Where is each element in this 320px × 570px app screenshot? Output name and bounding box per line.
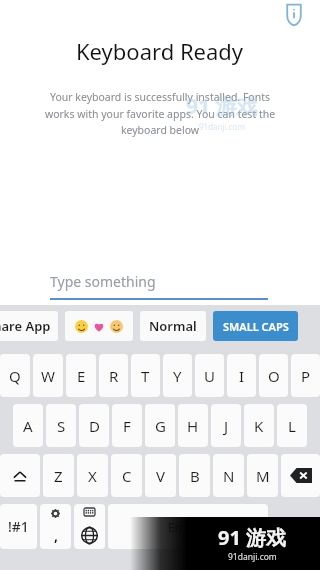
- button[interactable]: Emoji: [65, 311, 133, 341]
- button[interactable]: X: [77, 454, 108, 497]
- staticText: N: [223, 466, 235, 486]
- button[interactable]: Comma and settings: [40, 504, 71, 549]
- staticText: B: [190, 466, 200, 486]
- staticText: V: [156, 466, 166, 486]
- button[interactable]: J: [211, 404, 241, 447]
- button[interactable]: Shift: [0, 454, 40, 497]
- button[interactable]: Z: [43, 454, 74, 497]
- button[interactable]: SMALL CAPS: [213, 311, 298, 341]
- button[interactable]: V: [145, 454, 176, 497]
- staticText: X: [88, 466, 97, 486]
- staticText: H: [187, 416, 199, 436]
- staticText: 91 游戏: [186, 92, 258, 121]
- staticText: F: [123, 416, 131, 436]
- staticText: 91 游戏: [218, 524, 287, 551]
- button[interactable]: W: [33, 354, 63, 397]
- staticText: 91danji.com: [199, 121, 245, 132]
- staticText: Your keyboard is successfully installed.…: [36, 90, 284, 137]
- button[interactable]: O: [259, 354, 288, 397]
- staticText: SMALL CAPS: [223, 319, 289, 334]
- staticText: M: [256, 466, 270, 486]
- button[interactable]: Space: [108, 504, 268, 549]
- staticText: T: [141, 366, 150, 386]
- button[interactable]: S: [46, 404, 76, 447]
- staticText: !#1: [8, 517, 29, 536]
- button[interactable]: R: [99, 354, 128, 397]
- button[interactable]: !#1: [0, 504, 37, 549]
- button[interactable]: Info: [281, 1, 307, 27]
- button[interactable]: E: [66, 354, 96, 397]
- staticText: English: [168, 519, 209, 535]
- staticText: K: [254, 416, 264, 436]
- button[interactable]: M: [247, 454, 278, 497]
- button[interactable]: P: [291, 354, 320, 397]
- button[interactable]: K: [244, 404, 274, 447]
- staticText: L: [288, 416, 296, 436]
- staticText: E: [77, 366, 86, 386]
- staticText: Type something: [50, 272, 156, 291]
- button[interactable]: C: [111, 454, 142, 497]
- button[interactable]: T: [131, 354, 160, 397]
- staticText: S: [57, 416, 66, 436]
- button[interactable]: B: [179, 454, 210, 497]
- button[interactable]: U: [195, 354, 224, 397]
- staticText: U: [204, 366, 215, 386]
- button[interactable]: F: [112, 404, 142, 447]
- button[interactable]: L: [277, 404, 307, 447]
- staticText: Q: [9, 366, 21, 386]
- button[interactable]: Backspace: [281, 454, 320, 497]
- button[interactable]: I: [227, 354, 256, 397]
- staticText: Y: [173, 366, 182, 386]
- staticText: W: [41, 366, 55, 386]
- staticText: R: [109, 366, 119, 386]
- staticText: Normal: [149, 317, 197, 335]
- staticText: I: [239, 366, 245, 386]
- staticText: Share App: [0, 317, 51, 335]
- staticText: A: [23, 416, 33, 436]
- staticText: Z: [54, 466, 63, 486]
- button[interactable]: Share App: [0, 311, 58, 341]
- staticText: O: [268, 366, 280, 386]
- staticText: 91danji.com: [228, 551, 277, 563]
- staticText: ,: [54, 526, 58, 545]
- button[interactable]: D: [79, 404, 109, 447]
- staticText: D: [89, 416, 100, 436]
- staticText: G: [155, 416, 166, 436]
- button[interactable]: H: [178, 404, 208, 447]
- button[interactable]: Change language: [74, 504, 105, 549]
- button[interactable]: Q: [0, 354, 30, 397]
- staticText: P: [301, 366, 311, 386]
- button[interactable]: G: [145, 404, 175, 447]
- button[interactable]: Y: [163, 354, 192, 397]
- button[interactable]: Normal: [140, 311, 206, 341]
- staticText: Keyboard Ready: [76, 36, 244, 66]
- button[interactable]: N: [213, 454, 244, 497]
- button[interactable]: A: [13, 404, 43, 447]
- staticText: J: [224, 416, 229, 436]
- staticText: C: [122, 466, 132, 486]
